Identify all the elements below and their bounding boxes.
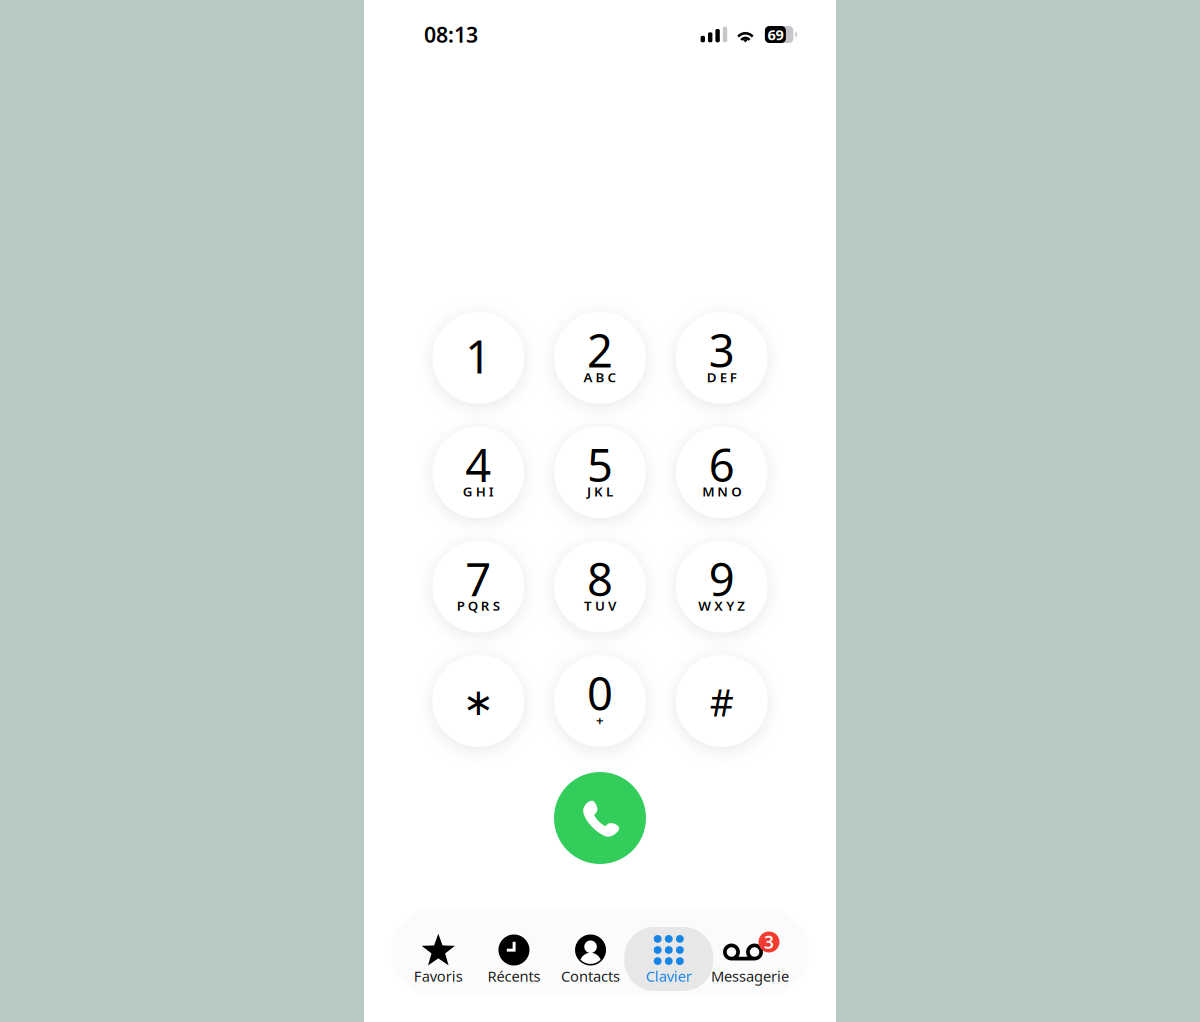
button[interactable]: 6 [661, 415, 783, 529]
button[interactable]: Favoris [401, 908, 476, 996]
staticText: Contacts [561, 966, 620, 986]
button[interactable]: 2 [539, 301, 661, 415]
staticText: 6 [709, 434, 735, 494]
staticText: 69 [767, 25, 783, 44]
button[interactable]: 3 [708, 908, 791, 996]
button[interactable]: 1 [417, 301, 539, 415]
staticText: 0 [587, 663, 613, 723]
staticText: 9 [709, 548, 735, 609]
staticText: P Q R S [457, 597, 500, 614]
staticText: 3 [764, 930, 774, 953]
staticText: M N O [702, 482, 741, 500]
staticText: 1 [465, 326, 491, 386]
button[interactable]: Appeler [554, 772, 646, 864]
staticText: 7 [465, 548, 491, 609]
button[interactable]: 8 [539, 529, 661, 644]
staticText: ∗ [463, 681, 494, 723]
staticText: # [710, 677, 734, 727]
staticText: Clavier [646, 966, 692, 986]
button[interactable]: # [661, 644, 783, 758]
staticText: + [596, 711, 604, 729]
staticText: J K L [587, 482, 613, 500]
button[interactable]: ∗ [417, 644, 539, 758]
button[interactable]: Récents [476, 908, 552, 996]
staticText: 2 [587, 320, 613, 380]
staticText: Messagerie [711, 966, 789, 986]
staticText: 8 [587, 548, 613, 609]
button[interactable]: 4 [417, 415, 539, 529]
staticText: 08:13 [424, 20, 478, 49]
button[interactable]: 3 [661, 301, 783, 415]
button[interactable]: 5 [539, 415, 661, 529]
staticText: 5 [587, 434, 613, 494]
button[interactable]: 7 [417, 529, 539, 644]
button[interactable]: 0 [539, 644, 661, 758]
staticText: Favoris [414, 966, 463, 986]
staticText: W X Y Z [698, 597, 745, 614]
button[interactable]: Clavier [629, 908, 708, 996]
staticText: G H I [463, 482, 494, 500]
staticText: D E F [707, 368, 737, 386]
button[interactable]: 9 [661, 529, 783, 644]
staticText: A B C [583, 368, 616, 386]
staticText: 4 [465, 434, 491, 494]
staticText: Récents [487, 966, 540, 986]
button[interactable]: Contacts [552, 908, 629, 996]
staticText: T U V [584, 597, 616, 614]
staticText: 3 [709, 320, 735, 380]
